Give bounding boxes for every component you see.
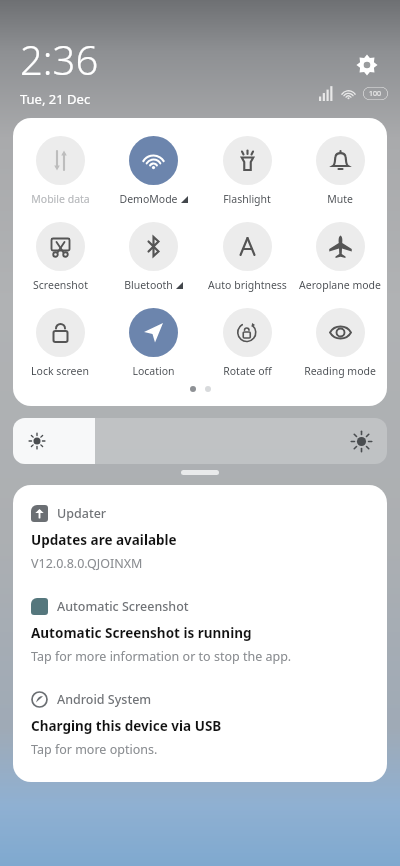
staticText: Aeroplane mode	[299, 278, 381, 292]
staticText: Rotate off	[223, 364, 272, 378]
staticText: 100	[369, 89, 382, 99]
staticText: Auto brightness	[208, 278, 287, 292]
button[interactable]: DemoMode	[107, 134, 199, 208]
staticText: Updates are available	[31, 531, 177, 549]
button[interactable]	[13, 418, 387, 464]
button[interactable]: Screenshot	[14, 220, 106, 294]
staticText: Automatic Screenshot	[57, 598, 189, 615]
button[interactable]: Lock screen	[14, 306, 106, 380]
staticText: Mute	[327, 192, 353, 206]
button[interactable]: Bluetooth	[107, 220, 199, 294]
button[interactable]: Mobile data	[14, 134, 106, 208]
button[interactable]: Mute	[294, 134, 386, 208]
staticText: Location	[132, 364, 175, 378]
staticText: Screenshot	[33, 278, 88, 292]
staticText: DemoMode	[119, 192, 178, 206]
button[interactable]: Settings	[348, 46, 386, 84]
staticText: Android System	[57, 691, 152, 708]
button[interactable]: Automatic Screenshot	[31, 598, 369, 665]
staticText: Tue, 21 Dec	[20, 90, 91, 108]
button[interactable]: Flashlight	[201, 134, 293, 208]
staticText: Updater	[57, 505, 107, 522]
button[interactable]: Location	[107, 306, 199, 380]
staticText: Reading mode	[304, 364, 376, 378]
button[interactable]: Reading mode	[294, 306, 386, 380]
button[interactable]: Updater	[31, 505, 369, 572]
staticText: Flashlight	[223, 192, 271, 206]
staticText: Mobile data	[31, 192, 90, 206]
staticText: Bluetooth	[124, 278, 173, 292]
staticText: Automatic Screenshot is running	[31, 624, 252, 642]
button[interactable]: Auto brightness	[201, 220, 293, 294]
staticText: Tap for more options.	[31, 741, 158, 758]
button[interactable]: Android System	[31, 691, 369, 758]
button[interactable]: Aeroplane mode	[294, 220, 386, 294]
staticText: Tap for more information or to stop the …	[31, 648, 292, 665]
staticText: Charging this device via USB	[31, 717, 222, 735]
button[interactable]: Rotate off	[201, 306, 293, 380]
staticText: V12.0.8.0.QJOINXM	[31, 555, 143, 572]
staticText: 2:36	[20, 32, 99, 86]
staticText: Lock screen	[31, 364, 89, 378]
